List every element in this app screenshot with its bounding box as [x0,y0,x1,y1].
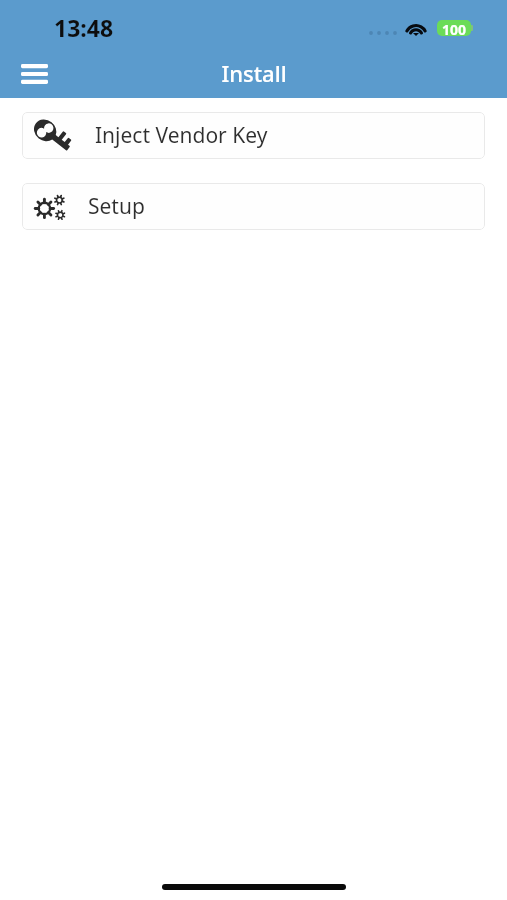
staticText: 100 [442,20,467,36]
button[interactable]: Open navigation menu [19,59,49,89]
staticText: Install [221,58,287,88]
button[interactable]: Setup [22,183,485,230]
button[interactable]: Inject Vendor Key [22,112,485,159]
staticText: Setup [88,192,145,221]
staticText: 13:48 [54,12,114,43]
staticText: Inject Vendor Key [95,121,268,150]
